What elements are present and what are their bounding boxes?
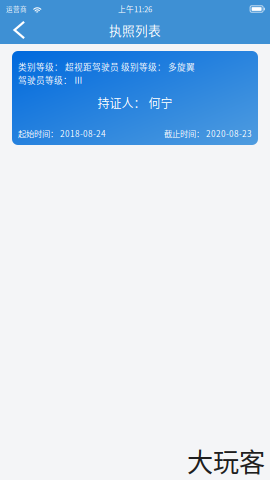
button[interactable]: 类别等级： 超视距驾驶员 级别等级： 多旋翼 <box>12 51 258 145</box>
staticText: 持证人： 何宁 <box>97 94 172 111</box>
staticText: 类别等级： 超视距驾驶员 级别等级： 多旋翼 <box>18 60 195 73</box>
staticText: 起始时间： 2018-08-24 <box>18 127 106 139</box>
staticText: 大玩客 <box>187 442 265 479</box>
staticText: 运营商 <box>6 4 27 14</box>
staticText: 驾驶员等级： Ⅲ <box>18 74 83 86</box>
staticText: 执照列表 <box>109 21 161 39</box>
staticText: 截止时间： 2020-08-23 <box>164 127 252 139</box>
button[interactable]: 返回 <box>0 17 44 43</box>
staticText: 上午11:26 <box>118 3 152 15</box>
